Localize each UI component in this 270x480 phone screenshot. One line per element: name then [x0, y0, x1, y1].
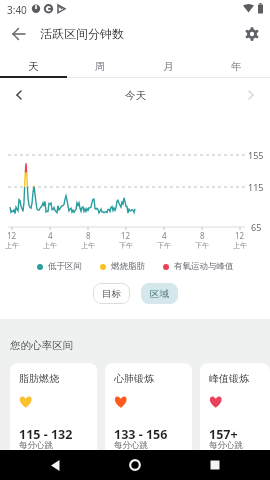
staticText: 155	[248, 149, 264, 161]
staticText: 上午	[81, 241, 95, 250]
button[interactable]	[238, 20, 266, 48]
staticText: 月	[163, 60, 174, 73]
staticText: 12	[235, 230, 245, 241]
staticText: 周	[95, 60, 106, 73]
staticText: 有氧运动与峰值	[174, 261, 234, 272]
staticText: 峰值锻炼	[209, 372, 249, 385]
button[interactable]: 年	[202, 48, 270, 78]
staticText: 脂肪燃烧	[19, 372, 59, 385]
button[interactable]	[120, 450, 150, 480]
button[interactable]: 峰值锻炼	[200, 363, 270, 463]
staticText: 12	[7, 230, 17, 241]
staticText: 上午	[233, 241, 247, 250]
staticText: 115	[248, 181, 264, 193]
staticText: 目标	[102, 288, 121, 300]
staticText: 65	[251, 221, 262, 233]
staticText: 8	[200, 230, 205, 241]
staticText: 上午	[5, 241, 19, 250]
button[interactable]: 目标	[93, 283, 130, 304]
button[interactable]	[40, 450, 70, 480]
button[interactable]: 天	[0, 48, 67, 78]
staticText: 下午	[195, 241, 209, 250]
staticText: 157+	[209, 426, 238, 443]
staticText: 今天	[125, 89, 146, 102]
staticText: 4	[162, 230, 167, 241]
staticText: 区域	[150, 288, 169, 300]
button[interactable]: 周	[67, 48, 134, 78]
button[interactable]	[4, 80, 34, 110]
staticText: 天	[28, 60, 39, 73]
staticText: 每分心跳	[19, 440, 53, 451]
button[interactable]: 心肺锻炼	[105, 363, 192, 463]
staticText: 下午	[119, 241, 133, 250]
staticText: 每分心跳	[209, 440, 243, 451]
staticText: 低于区间	[48, 261, 82, 272]
staticText: 4	[48, 230, 53, 241]
staticText: 上午	[43, 241, 57, 250]
staticText: 心肺锻炼	[114, 372, 154, 385]
staticText: 12	[121, 230, 131, 241]
staticText: 3:40	[7, 3, 27, 17]
button[interactable]: 月	[134, 48, 202, 78]
staticText: 燃烧脂肪	[111, 261, 145, 272]
button[interactable]	[200, 450, 230, 480]
button[interactable]	[236, 80, 266, 110]
staticText: 活跃区间分钟数	[40, 26, 124, 41]
button[interactable]: 区域	[141, 283, 178, 304]
staticText: 年	[231, 60, 242, 73]
staticText: 您的心率区间	[10, 339, 73, 352]
staticText: 133 - 156	[114, 426, 168, 443]
button[interactable]: 脂肪燃烧	[10, 363, 97, 463]
staticText: 115 - 132	[19, 426, 73, 443]
staticText: 每分心跳	[114, 440, 148, 451]
staticText: 下午	[157, 241, 171, 250]
staticText: 8	[86, 230, 91, 241]
button[interactable]	[5, 20, 33, 48]
